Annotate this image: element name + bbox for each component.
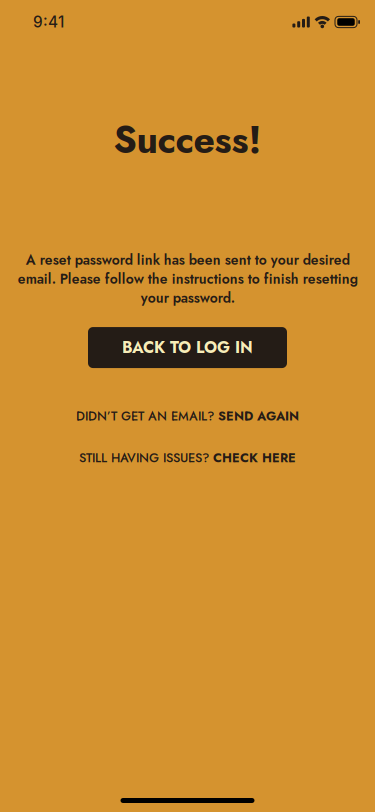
button[interactable]: BACK TO LOG IN <box>88 327 287 368</box>
staticText: STILL HAVING ISSUES? CHECK HERE <box>79 449 296 467</box>
staticText: BACK TO LOG IN <box>122 336 253 359</box>
staticText: DIDN’T GET AN EMAIL? SEND AGAIN <box>76 407 299 425</box>
staticText: A reset password link has been sent to y… <box>17 250 357 308</box>
button[interactable]: STILL HAVING ISSUES? CHECK HERE <box>73 445 302 471</box>
staticText: 9:41 <box>33 13 64 31</box>
staticText: Success! <box>113 113 261 167</box>
button[interactable]: DIDN’T GET AN EMAIL? SEND AGAIN <box>70 403 305 429</box>
